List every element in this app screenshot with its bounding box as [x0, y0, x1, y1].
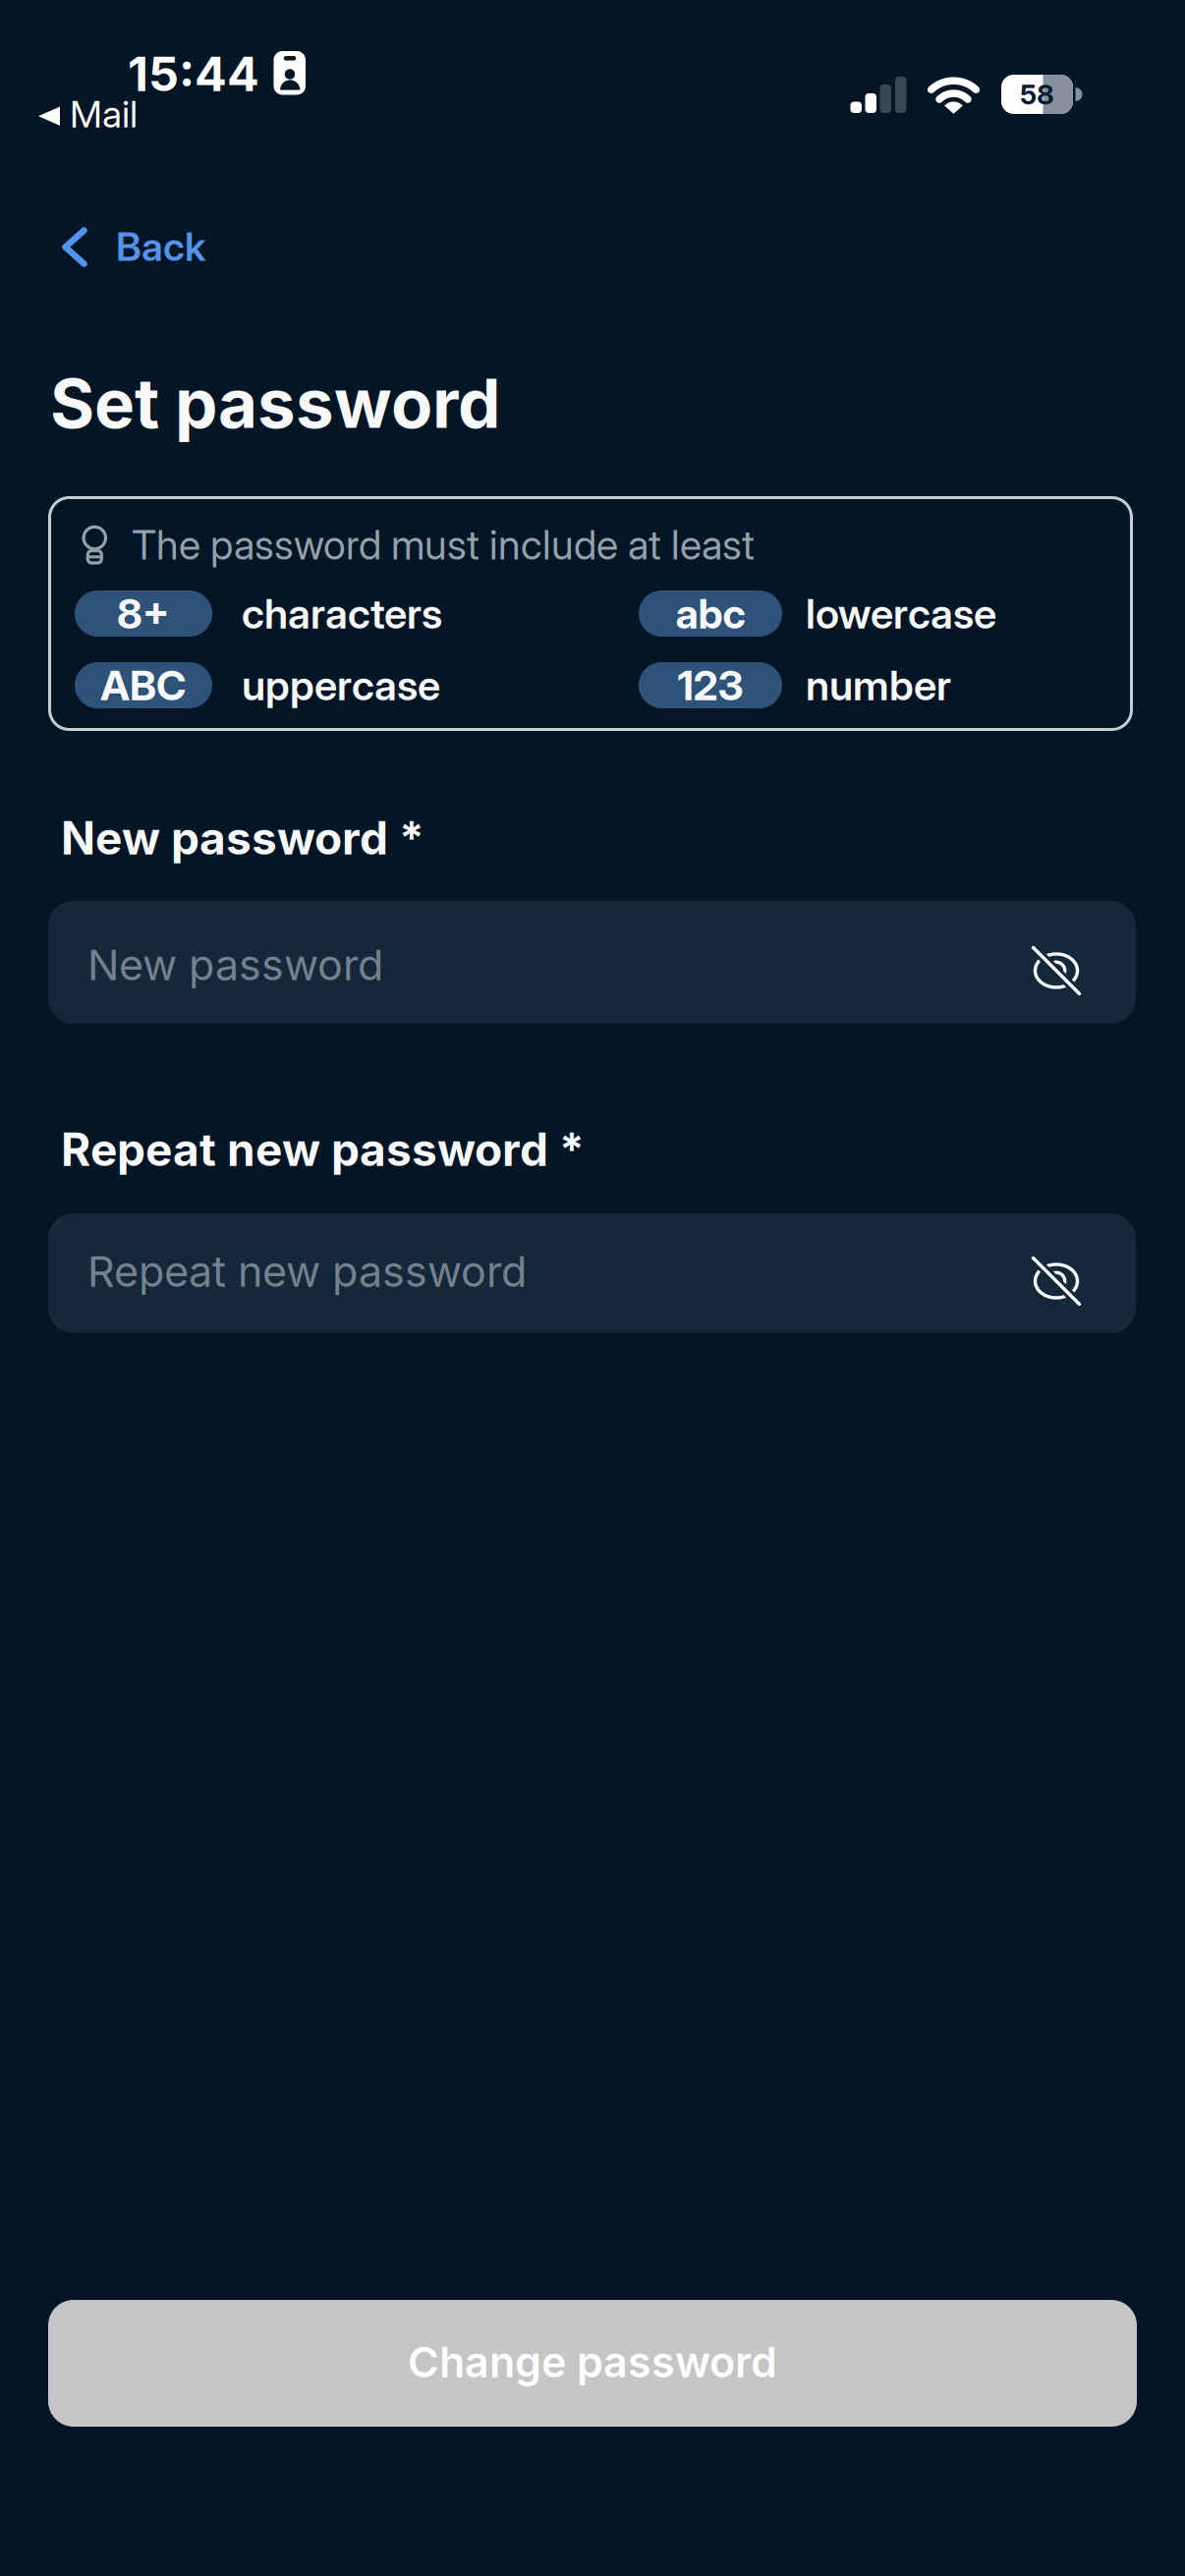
staticText: 58 — [1020, 78, 1054, 111]
staticText: Mail — [70, 91, 138, 137]
staticText: lowercase — [806, 589, 996, 638]
staticText: characters — [242, 589, 442, 638]
staticText: New password * — [61, 811, 424, 865]
staticText: Change password — [408, 2336, 777, 2387]
staticText: The password must include at least — [132, 520, 755, 569]
staticText: Set password — [50, 362, 500, 444]
staticText: uppercase — [242, 660, 440, 710]
staticText: ABC — [100, 660, 187, 710]
staticText: New password — [87, 939, 383, 990]
staticText: abc — [676, 589, 745, 638]
staticText: 123 — [677, 660, 743, 710]
staticText: Back — [116, 223, 206, 270]
staticText: Repeat new password * — [61, 1122, 585, 1177]
staticText: number — [806, 660, 951, 710]
staticText: Repeat new password — [87, 1246, 527, 1297]
staticText: 8+ — [117, 589, 170, 638]
staticText: 15:44 — [128, 45, 259, 103]
